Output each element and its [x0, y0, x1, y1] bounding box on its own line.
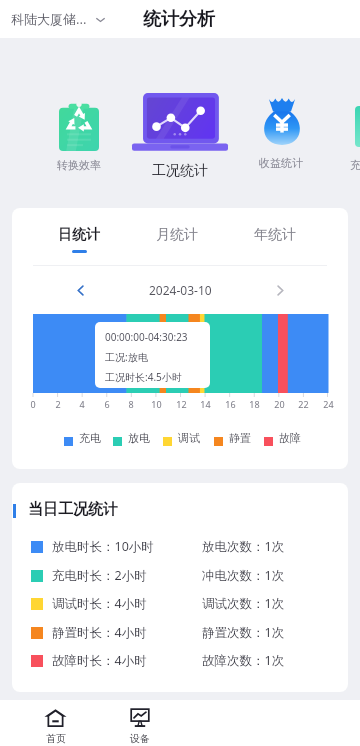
staticText: 工况:放电 [105, 350, 148, 364]
staticText: 静置 [229, 431, 251, 445]
staticText: 充电时长：2小时 [52, 567, 147, 584]
staticText: 冲电次数：1次 [202, 567, 285, 584]
button[interactable]: 首页 [15, 700, 96, 746]
button[interactable]: 科陆大厦储... [11, 0, 106, 38]
staticText: 充电 [79, 431, 101, 445]
staticText: 调试时长：4小时 [52, 595, 147, 612]
staticText: 收益统计 [259, 156, 303, 170]
staticText: 00:00:00-04:30:23 [105, 330, 188, 344]
staticText: 故障次数：1次 [202, 652, 285, 669]
staticText: 当日工况统计 [28, 500, 118, 519]
staticText: 放电 [128, 431, 150, 445]
staticText: 放电次数：1次 [202, 538, 285, 555]
staticText: 年统计 [254, 226, 296, 244]
staticText: 统计分析 [143, 8, 215, 31]
button[interactable]: 月统计 [147, 226, 207, 253]
staticText: 放电时长：10小时 [52, 538, 154, 555]
staticText: 故障时长：4小时 [52, 652, 147, 669]
button[interactable]: Previous day [68, 278, 92, 302]
staticText: 充电统计 [350, 158, 360, 172]
staticText: 0 [30, 398, 36, 410]
staticText: 14 [200, 398, 211, 410]
staticText: 18 [249, 398, 260, 410]
button[interactable]: 转换效率 [39, 93, 119, 178]
staticText: 科陆大厦储... [11, 10, 87, 28]
staticText: 8 [128, 398, 134, 410]
staticText: 静置时长：4小时 [52, 624, 147, 641]
staticText: 24 [323, 398, 334, 410]
button[interactable]: Next day [268, 278, 292, 302]
staticText: 12 [176, 398, 187, 410]
staticText: 10 [151, 398, 162, 410]
staticText: 2 [55, 398, 61, 410]
staticText: 4 [79, 398, 85, 410]
staticText: 月统计 [156, 226, 198, 244]
staticText: 2024-03-10 [149, 282, 212, 298]
staticText: 首页 [46, 732, 66, 745]
button[interactable]: 收益统计 [241, 88, 321, 173]
staticText: 工况时长:4.5小时 [105, 370, 182, 384]
staticText: 20 [274, 398, 285, 410]
staticText: 静置次数：1次 [202, 624, 285, 641]
staticText: 6 [104, 398, 110, 410]
staticText: 设备 [130, 732, 150, 745]
button[interactable]: 日统计 [49, 226, 109, 253]
staticText: 日统计 [58, 226, 100, 244]
staticText: 故障 [279, 431, 301, 445]
staticText: 工况统计 [152, 162, 208, 180]
staticText: 调试 [178, 431, 200, 445]
button[interactable]: 设备 [100, 700, 180, 746]
staticText: 16 [225, 398, 236, 410]
button[interactable]: 年统计 [245, 226, 305, 253]
staticText: 调试次数：1次 [202, 595, 285, 612]
staticText: 转换效率 [57, 158, 101, 172]
staticText: 22 [298, 398, 309, 410]
button[interactable]: 工况统计 [132, 85, 228, 185]
